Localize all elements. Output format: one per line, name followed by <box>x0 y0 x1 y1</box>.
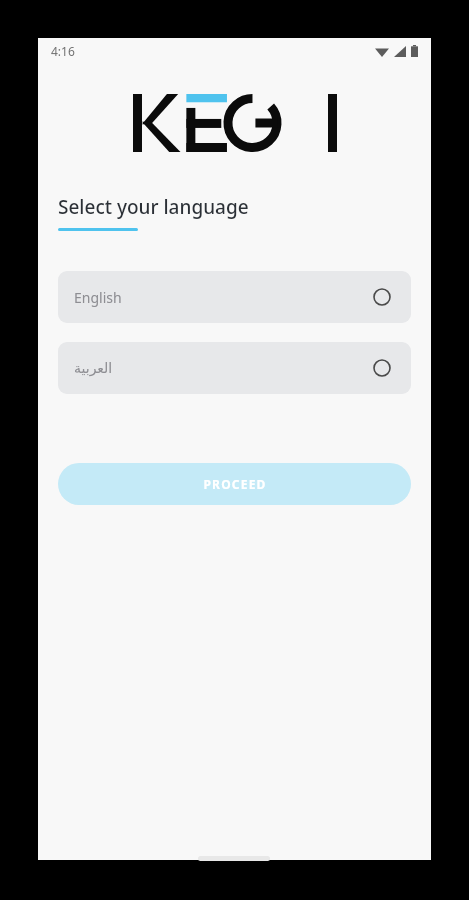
button[interactable]: العربية <box>58 342 411 394</box>
staticText: Select your language <box>58 194 249 220</box>
button[interactable]: English <box>58 271 411 323</box>
button[interactable]: PROCEED <box>58 463 411 505</box>
staticText: 4:16 <box>51 43 75 59</box>
staticText: English <box>74 288 122 307</box>
staticText: العربية <box>74 360 113 376</box>
staticText: PROCEED <box>203 476 267 492</box>
